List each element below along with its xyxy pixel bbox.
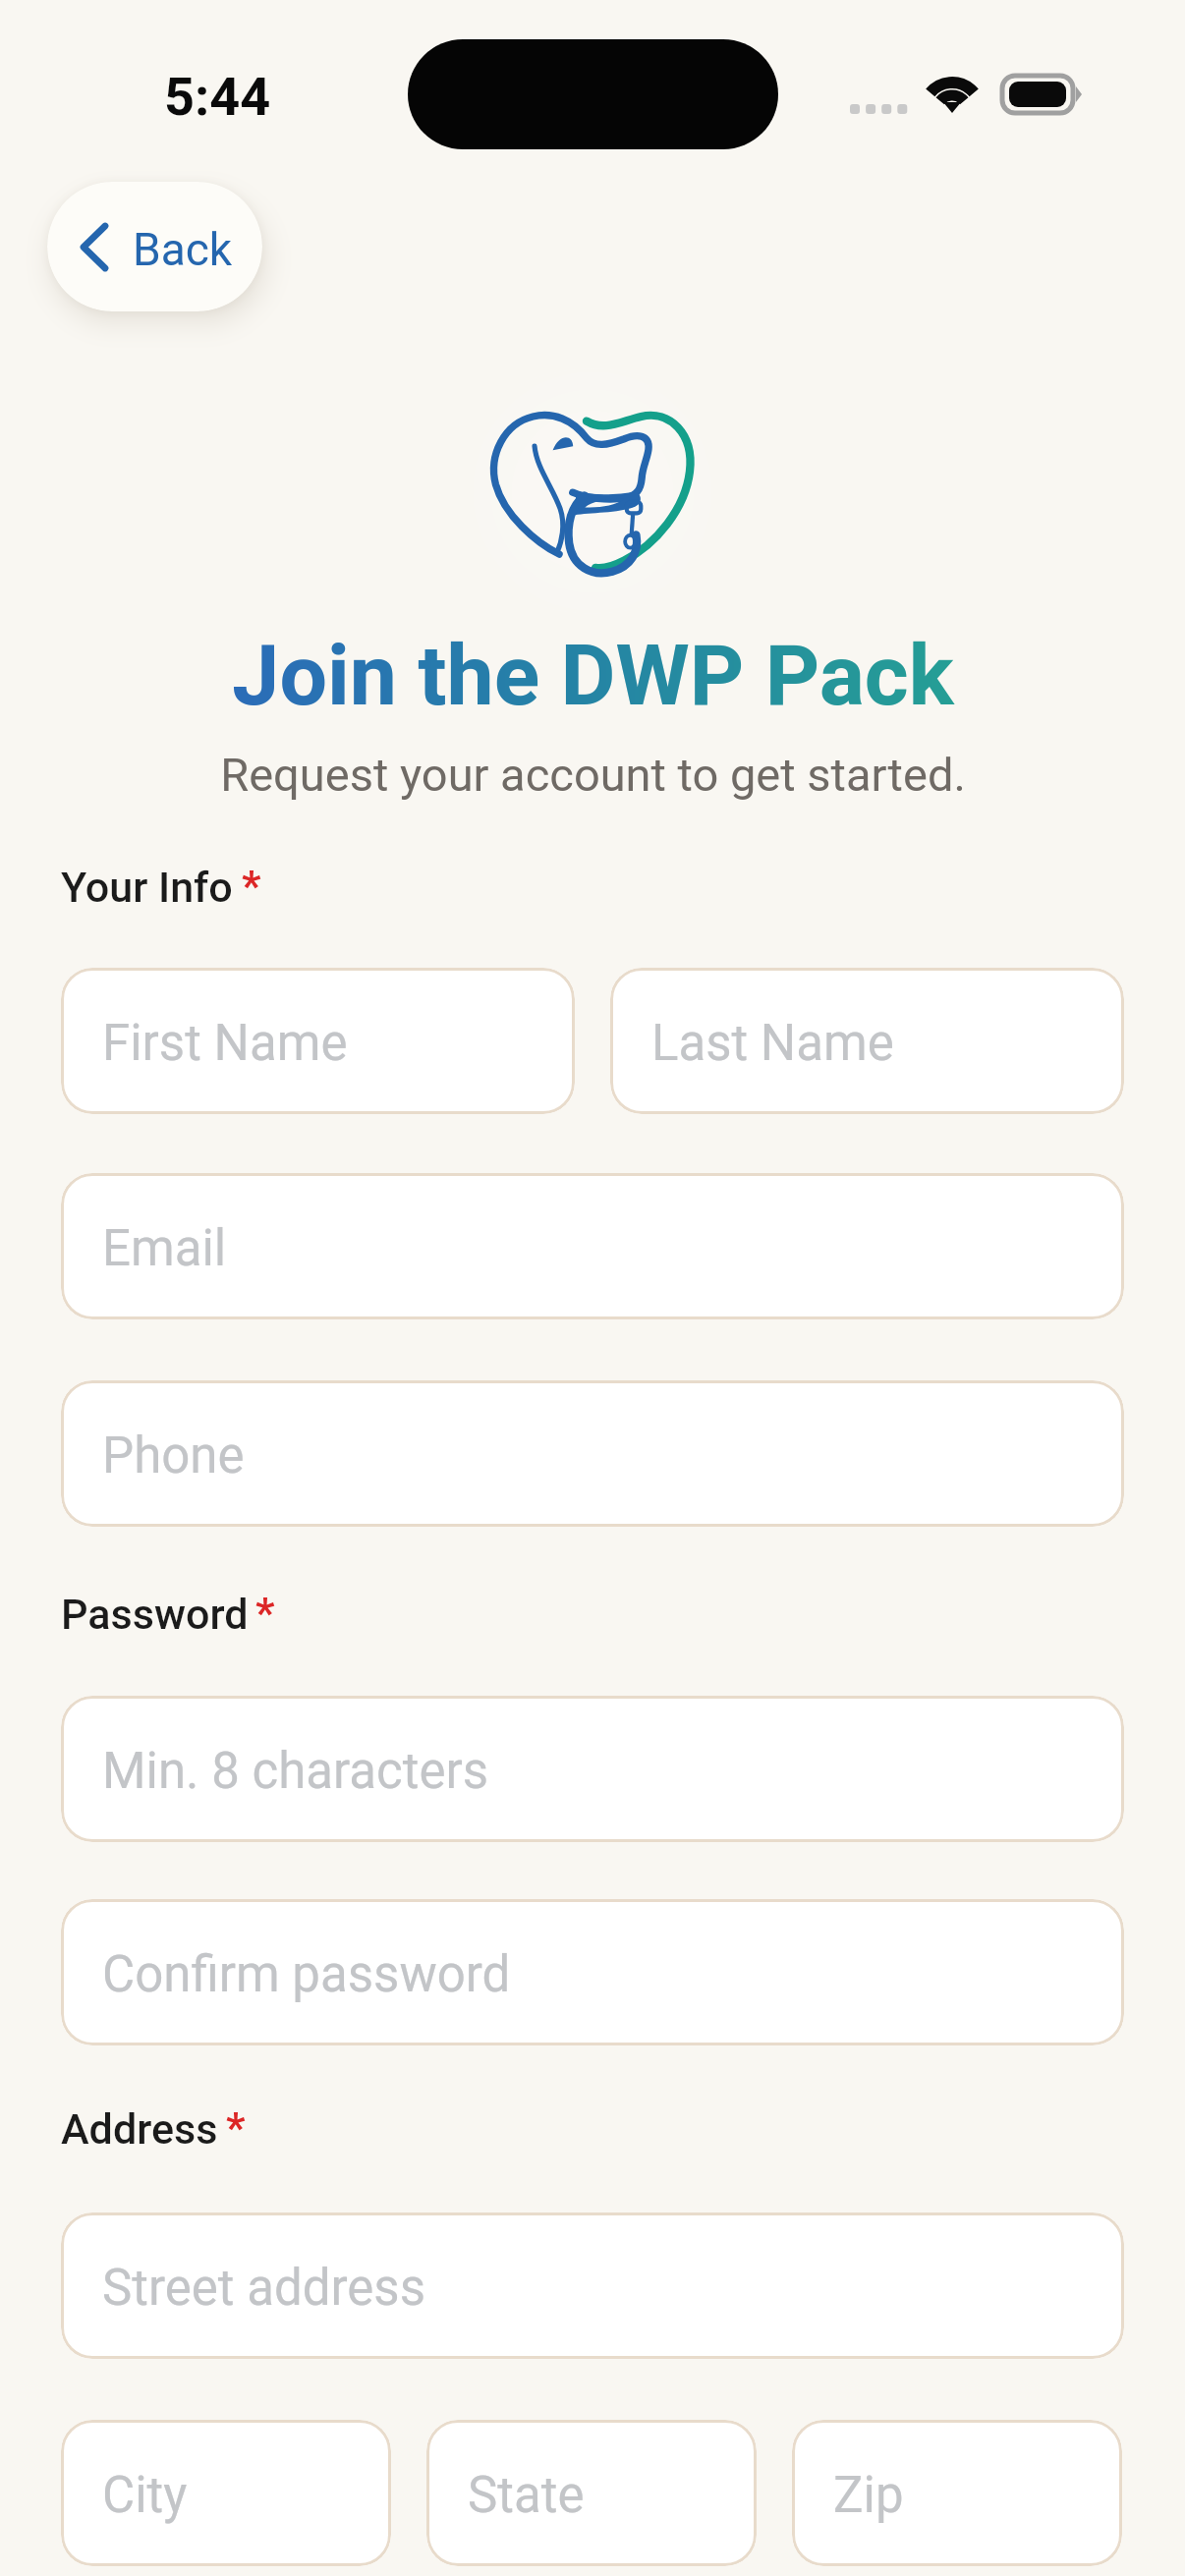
staticText: Min. 8 characters [102,1742,489,1801]
staticText: * [242,861,261,910]
staticText: State [468,2466,585,2525]
staticText: Phone [102,1427,245,1485]
staticText: * [255,1588,275,1637]
button[interactable]: Last Name [610,968,1124,1114]
staticText: Confirm password [102,1945,511,2004]
staticText: Last Name [651,1014,894,1073]
button[interactable]: Back [47,182,262,311]
staticText: Request your account to get started. [220,748,966,802]
button[interactable]: City [61,2420,391,2566]
staticText: First Name [102,1014,348,1073]
staticText: City [102,2466,188,2525]
staticText: Zip [833,2466,904,2525]
staticText: 5:44 [164,66,271,128]
staticText: Address [61,2104,218,2154]
button[interactable]: Street address [61,2212,1124,2359]
staticText: * [226,2102,246,2152]
staticText: Your Info [61,863,233,912]
staticText: Join the DWP Pack [232,626,954,725]
button[interactable]: Confirm password [61,1899,1124,2045]
button[interactable]: Zip [792,2420,1122,2566]
button[interactable]: Email [61,1173,1124,1319]
button[interactable]: Phone [61,1380,1124,1527]
staticText: Street address [102,2259,425,2318]
button[interactable]: State [426,2420,757,2566]
button[interactable]: Min. 8 characters [61,1696,1124,1842]
button[interactable]: First Name [61,968,575,1114]
staticText: Email [102,1219,227,1278]
staticText: Password [61,1590,249,1639]
staticText: Back [133,223,233,276]
